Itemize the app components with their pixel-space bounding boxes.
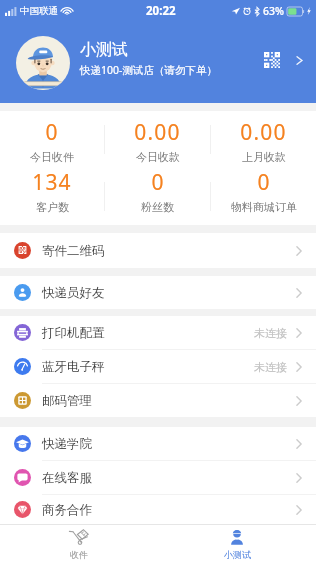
staticText: 快递学院 <box>42 436 92 452</box>
staticText: 未连接 <box>254 360 287 374</box>
staticText: 邮码管理 <box>42 393 92 409</box>
button[interactable]: 0.00 <box>105 111 210 168</box>
button[interactable]: 快递学院 <box>0 427 316 460</box>
staticText: 未连接 <box>254 326 287 340</box>
button[interactable]: 蓝牙电子秤 <box>0 350 316 383</box>
staticText: 快递员好友 <box>42 285 105 301</box>
staticText: 商务合作 <box>42 502 92 518</box>
staticText: 0.00 <box>240 118 287 147</box>
staticText: 今日收件 <box>30 150 74 164</box>
button[interactable]: 0 <box>211 168 316 225</box>
staticText: 物料商城订单 <box>231 200 297 214</box>
button[interactable]: 小测试 <box>0 22 316 103</box>
staticText: 在线客服 <box>42 470 92 486</box>
staticText: 粉丝数 <box>141 200 174 214</box>
staticText: 0.00 <box>134 118 181 147</box>
staticText: 小测试 <box>224 549 251 560</box>
button[interactable]: 扫一扫 <box>259 47 285 73</box>
staticText: 快递100-测试店（请勿下单） <box>80 63 217 77</box>
staticText: 134 <box>32 168 72 197</box>
staticText: 0 <box>151 168 165 197</box>
staticText: 打印机配置 <box>42 325 105 341</box>
button[interactable]: 0.00 <box>211 111 316 168</box>
staticText: 收件 <box>70 549 88 560</box>
button[interactable]: 寄件二维码 <box>0 233 316 268</box>
button[interactable]: 打印机配置 <box>0 316 316 349</box>
button[interactable]: 快递员好友 <box>0 276 316 309</box>
button[interactable]: 0 <box>105 168 210 225</box>
staticText: 寄件二维码 <box>42 243 105 259</box>
staticText: 上月收款 <box>242 150 286 164</box>
staticText: 20:22 <box>146 3 176 19</box>
button[interactable]: 134 <box>0 168 104 225</box>
staticText: 0 <box>45 118 59 147</box>
button[interactable]: 邮码管理 <box>0 384 316 417</box>
button[interactable]: 小测试 <box>158 525 316 562</box>
button[interactable]: 在线客服 <box>0 461 316 494</box>
staticText: 63% <box>263 4 284 18</box>
staticText: 小测试 <box>80 40 128 60</box>
staticText: 蓝牙电子秤 <box>42 359 105 375</box>
button[interactable]: 商务合作 <box>0 495 316 524</box>
staticText: 中国联通 <box>20 5 58 17</box>
button[interactable]: 0 <box>0 111 104 168</box>
staticText: 客户数 <box>36 200 69 214</box>
button[interactable]: 收件 <box>0 525 158 562</box>
staticText: 0 <box>257 168 271 197</box>
staticText: 今日收款 <box>136 150 180 164</box>
